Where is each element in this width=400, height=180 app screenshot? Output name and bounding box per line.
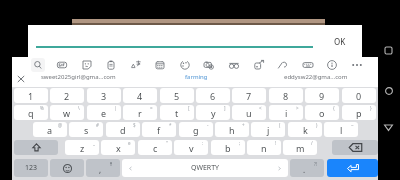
button[interactable]: y: [196, 105, 230, 120]
button[interactable]: Comma: [86, 159, 120, 177]
staticText: 123: [25, 163, 38, 173]
button[interactable]: 4: [123, 88, 157, 103]
button[interactable]: 7: [232, 88, 266, 103]
button[interactable]: r: [123, 105, 157, 120]
button[interactable]: Share image: [251, 57, 267, 73]
staticText: l: [340, 124, 343, 136]
button[interactable]: Shift: [14, 140, 58, 155]
button[interactable]: v: [174, 140, 208, 155]
staticText: @: [58, 122, 63, 128]
button[interactable]: Themes: [177, 57, 193, 73]
button[interactable]: Space: [122, 159, 288, 177]
button[interactable]: 2: [50, 88, 84, 103]
button[interactable]: Calendar: [152, 57, 168, 73]
button[interactable]: d: [106, 122, 140, 137]
staticText: 2: [64, 90, 70, 102]
staticText: }: [370, 105, 372, 111]
staticText: i: [285, 107, 288, 119]
staticText: k: [303, 124, 308, 136]
staticText: (: [279, 122, 281, 128]
button[interactable]: s: [69, 122, 103, 137]
staticText: :: [202, 140, 204, 146]
button[interactable]: i: [269, 105, 303, 120]
button[interactable]: a: [33, 122, 67, 137]
button[interactable]: w: [50, 105, 84, 120]
staticText: 9: [319, 90, 325, 102]
button[interactable]: 3: [87, 88, 121, 103]
button[interactable]: b: [211, 140, 245, 155]
button[interactable]: e: [87, 105, 121, 120]
button[interactable]: sweet2025girl@gma...com: [41, 73, 116, 81]
button[interactable]: Camera settings: [201, 57, 217, 73]
button[interactable]: q: [14, 105, 48, 120]
button[interactable]: Collapse: [13, 71, 29, 87]
button[interactable]: f: [142, 122, 176, 137]
button[interactable]: OK: [320, 30, 360, 52]
staticText: x: [116, 142, 121, 154]
staticText: *: [169, 122, 172, 128]
staticText: _: [93, 140, 95, 146]
button[interactable]: m: [283, 140, 317, 155]
staticText: r: [138, 107, 142, 119]
button[interactable]: 0: [342, 88, 376, 103]
button[interactable]: Home: [380, 82, 397, 99]
button[interactable]: Handwriting: [275, 57, 291, 73]
button[interactable]: Period: [290, 159, 324, 177]
button[interactable]: Clipboard: [103, 57, 119, 73]
button[interactable]: Info: [324, 57, 340, 73]
button[interactable]: 9: [305, 88, 339, 103]
button[interactable]: o: [305, 105, 339, 120]
staticText: ?!: [314, 161, 318, 167]
button[interactable]: Recent apps: [380, 42, 397, 59]
staticText: 8: [283, 90, 289, 102]
staticText: 5: [174, 90, 180, 102]
button[interactable]: eddysw22@gma...com: [284, 73, 348, 81]
button[interactable]: Stickers: [79, 57, 95, 73]
staticText: 3: [101, 90, 107, 102]
button[interactable]: GIF: [54, 57, 70, 73]
staticText: o: [319, 107, 325, 119]
staticText: +: [242, 122, 245, 128]
button[interactable]: Emoji: [50, 159, 84, 177]
button[interactable]: Switch to numbers: [14, 159, 48, 177]
button[interactable]: 6: [196, 88, 230, 103]
button[interactable]: 5: [160, 88, 194, 103]
staticText: v: [189, 142, 194, 154]
button[interactable]: z: [65, 140, 99, 155]
staticText: <: [259, 105, 262, 111]
staticText: b: [225, 142, 231, 154]
button[interactable]: h: [215, 122, 249, 137]
staticText: g: [193, 124, 199, 136]
staticText: q: [28, 107, 34, 119]
staticText: OK: [334, 36, 346, 47]
button[interactable]: p: [342, 105, 376, 120]
staticText: 1: [28, 90, 34, 102]
staticText: $: [133, 122, 136, 128]
button[interactable]: c: [138, 140, 172, 155]
staticText: 7: [246, 90, 252, 102]
button[interactable]: u: [232, 105, 266, 120]
button[interactable]: t: [160, 105, 194, 120]
button[interactable]: k: [288, 122, 322, 137]
button[interactable]: x: [101, 140, 135, 155]
button[interactable]: n: [247, 140, 281, 155]
button[interactable]: Enter: [327, 159, 378, 177]
button[interactable]: Backspace: [332, 140, 378, 155]
button[interactable]: Back: [380, 119, 397, 136]
button[interactable]: g: [179, 122, 213, 137]
button[interactable]: Translate: [128, 57, 144, 73]
button[interactable]: l: [324, 122, 358, 137]
button[interactable]: 1: [14, 88, 48, 103]
staticText: QWERTY: [191, 163, 220, 173]
button[interactable]: More options: [349, 57, 365, 73]
button[interactable]: farming: [185, 73, 208, 81]
staticText: eddysw22@gma...com: [284, 73, 348, 81]
staticText: \: [78, 105, 80, 111]
button[interactable]: Search: [30, 57, 46, 73]
button[interactable]: Incognito: [226, 57, 242, 73]
staticText: f: [157, 124, 161, 136]
button[interactable]: j: [251, 122, 285, 137]
button[interactable]: 8: [269, 88, 303, 103]
button[interactable]: Keyboard modes: [300, 57, 316, 73]
staticText: !: [275, 140, 277, 146]
